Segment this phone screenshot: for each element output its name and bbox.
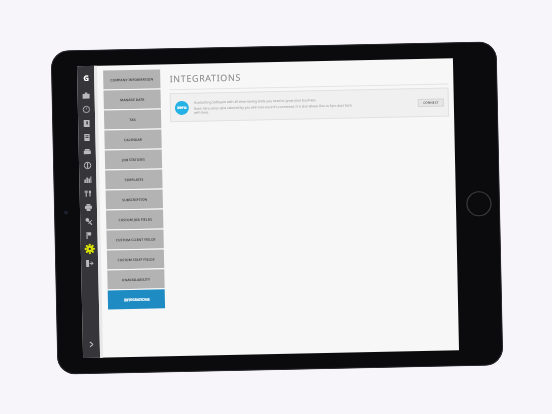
button[interactable]: UNAVAILABILITY [107, 269, 165, 290]
button[interactable]: TEMPLATES [105, 169, 163, 190]
staticText: CUSTOM-CLIENT FIELDS [116, 236, 156, 242]
staticText: INTEGRATIONS [124, 297, 150, 302]
staticText: COMPANY INFORMATION [110, 77, 153, 82]
staticText: with Xero. [194, 110, 209, 115]
button[interactable]: TAX [104, 109, 161, 130]
staticText: MANAGE DATA [120, 97, 145, 102]
button[interactable]: CONNECT [418, 98, 444, 107]
button[interactable]: MANAGE DATA [103, 89, 161, 110]
button[interactable]: CALENDAR [104, 129, 162, 150]
button[interactable]: Document [78, 130, 96, 144]
staticText: Note: Xero syncs data selected by you wi… [194, 103, 352, 111]
staticText: Accounting Software with all time-saving… [194, 97, 317, 104]
staticText: xero [177, 105, 187, 111]
button[interactable]: Tools [79, 186, 97, 200]
button[interactable]: Box [79, 144, 96, 158]
button[interactable]: JOB STATUSES [105, 149, 162, 170]
staticText: CONNECT [423, 101, 439, 105]
button[interactable]: Logout [81, 256, 98, 270]
button[interactable]: Clock [78, 102, 95, 116]
button[interactable]: Printer [80, 200, 97, 214]
button[interactable]: CUSTOM-CLIENT FIELDS [106, 229, 164, 250]
button[interactable]: Chart [79, 172, 96, 186]
staticText: SUBSCRIPTION [122, 197, 148, 202]
staticText: TAX [129, 117, 136, 122]
button[interactable]: Home [79, 71, 92, 84]
button[interactable]: Book [78, 116, 95, 130]
staticText: TEMPLATES [124, 177, 143, 182]
button[interactable]: Briefcase [77, 88, 95, 102]
button[interactable]: Flag [80, 228, 98, 242]
staticText: INTEGRATIONS [169, 71, 241, 84]
button[interactable]: Tag [80, 214, 97, 228]
staticText: CALENDAR [123, 137, 143, 142]
button[interactable]: INTEGRATIONS [108, 289, 165, 310]
staticText: G [83, 73, 89, 83]
staticText: CUSTOM STAFF FIELDS [117, 257, 155, 262]
button[interactable]: SUBSCRIPTION [106, 189, 163, 210]
staticText: UNAVAILABILITY [121, 277, 150, 282]
button[interactable]: CUSTOM JOB FIELDS [106, 209, 163, 230]
button[interactable]: Expand menu [83, 336, 100, 352]
staticText: JOB STATUSES [122, 157, 145, 162]
button[interactable]: Settings [81, 242, 98, 256]
button[interactable]: Money [79, 158, 96, 172]
staticText: CUSTOM JOB FIELDS [118, 217, 152, 222]
button[interactable]: COMPANY INFORMATION [103, 69, 160, 90]
button[interactable]: CUSTOM STAFF FIELDS [107, 249, 164, 270]
